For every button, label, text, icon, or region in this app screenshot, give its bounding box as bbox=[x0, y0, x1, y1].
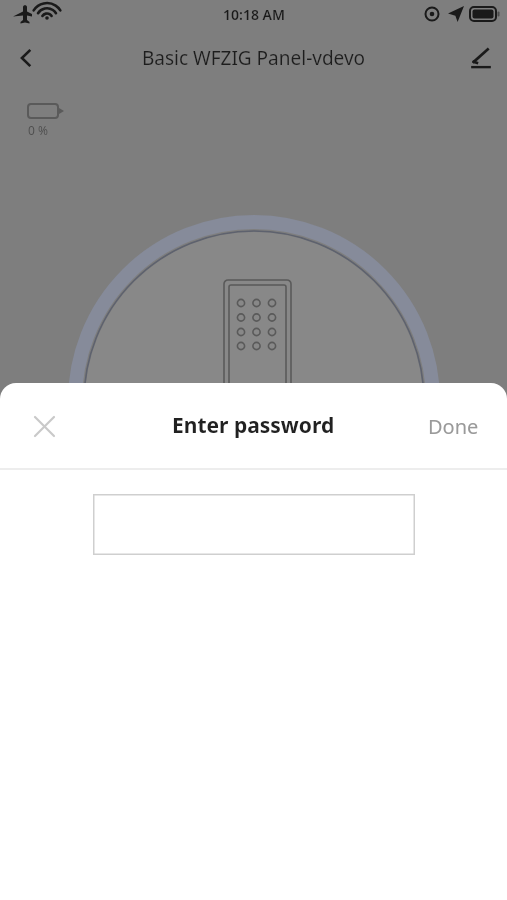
button[interactable]: Edit bbox=[459, 36, 503, 80]
staticText: Enter password bbox=[172, 411, 335, 440]
staticText: Done bbox=[428, 413, 479, 440]
button[interactable]: Password input field bbox=[93, 494, 415, 555]
button[interactable]: Done bbox=[400, 398, 507, 454]
button[interactable]: Back bbox=[4, 36, 48, 80]
staticText: 0 % bbox=[28, 122, 48, 138]
button[interactable]: Close bbox=[20, 402, 68, 450]
staticText: 10:18 AM bbox=[223, 5, 285, 24]
staticText: Basic WFZIG Panel-vdevo bbox=[60, 45, 447, 71]
